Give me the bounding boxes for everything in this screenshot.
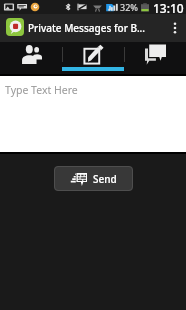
button[interactable]: Send [54, 166, 133, 191]
button[interactable]: Messages [124, 42, 186, 71]
staticText: 32% [120, 1, 138, 13]
staticText: 13:10 [153, 0, 184, 14]
button[interactable]: More options [164, 14, 186, 42]
button[interactable]: Contacts [0, 42, 62, 71]
staticText: Send [93, 172, 117, 186]
button[interactable]: Compose message [62, 42, 124, 71]
staticText: Type Text Here [5, 83, 78, 97]
staticText: Private Messages for B... [28, 21, 164, 35]
